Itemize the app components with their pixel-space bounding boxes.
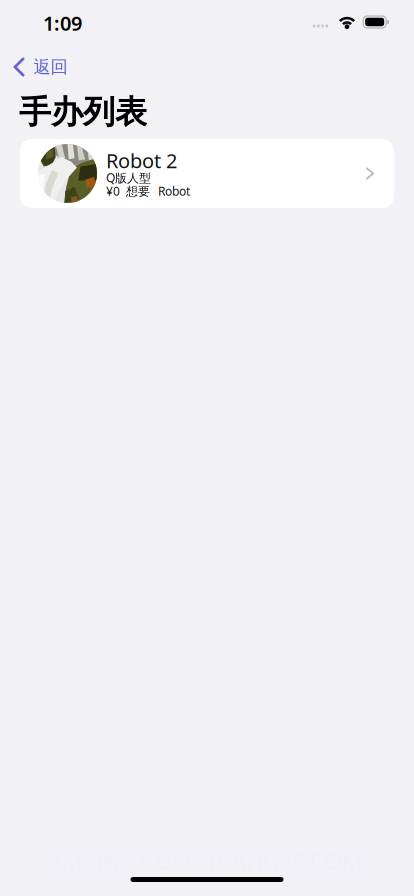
staticText: 返回 bbox=[33, 56, 67, 78]
staticText: Q版人型 bbox=[106, 169, 151, 185]
button[interactable]: Robot 2 bbox=[20, 139, 394, 208]
staticText: 手办列表 bbox=[19, 92, 147, 132]
staticText: 1:09 bbox=[43, 10, 82, 36]
button[interactable]: 返回 bbox=[0, 52, 414, 82]
staticText: ¥0 想要 Robot bbox=[106, 183, 190, 199]
staticText: Robot 2 bbox=[106, 147, 177, 174]
